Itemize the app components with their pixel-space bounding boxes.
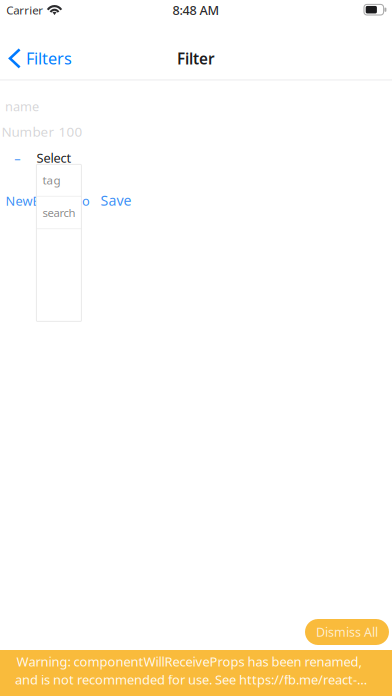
staticText: Select	[37, 149, 72, 166]
staticText: Carrier	[6, 2, 43, 18]
button[interactable]: Dismiss All	[305, 619, 389, 645]
button[interactable]: Filters	[0, 36, 96, 80]
staticText: and is not recommended for use. See http…	[15, 671, 367, 688]
staticText: Dismiss All	[316, 623, 378, 641]
staticText: Save	[100, 191, 131, 210]
staticText: 8:48 AM	[172, 2, 219, 19]
button[interactable]: Save	[100, 191, 131, 209]
staticText: Go	[73, 192, 90, 209]
button[interactable]: Go	[73, 193, 90, 209]
staticText: Filters	[26, 47, 72, 69]
staticText: Filter	[177, 48, 215, 69]
staticText: tag	[43, 172, 61, 188]
staticText: NewButton	[6, 192, 75, 209]
button[interactable]: tag	[36, 164, 81, 196]
button[interactable]: search	[36, 197, 81, 228]
staticText: Warning: componentWillReceiveProps has b…	[16, 653, 361, 670]
staticText: Number 100	[2, 122, 83, 141]
staticText: search	[43, 205, 76, 220]
staticText: name	[5, 97, 39, 115]
staticText: –	[14, 150, 20, 167]
button[interactable]: NewButton	[6, 193, 75, 209]
